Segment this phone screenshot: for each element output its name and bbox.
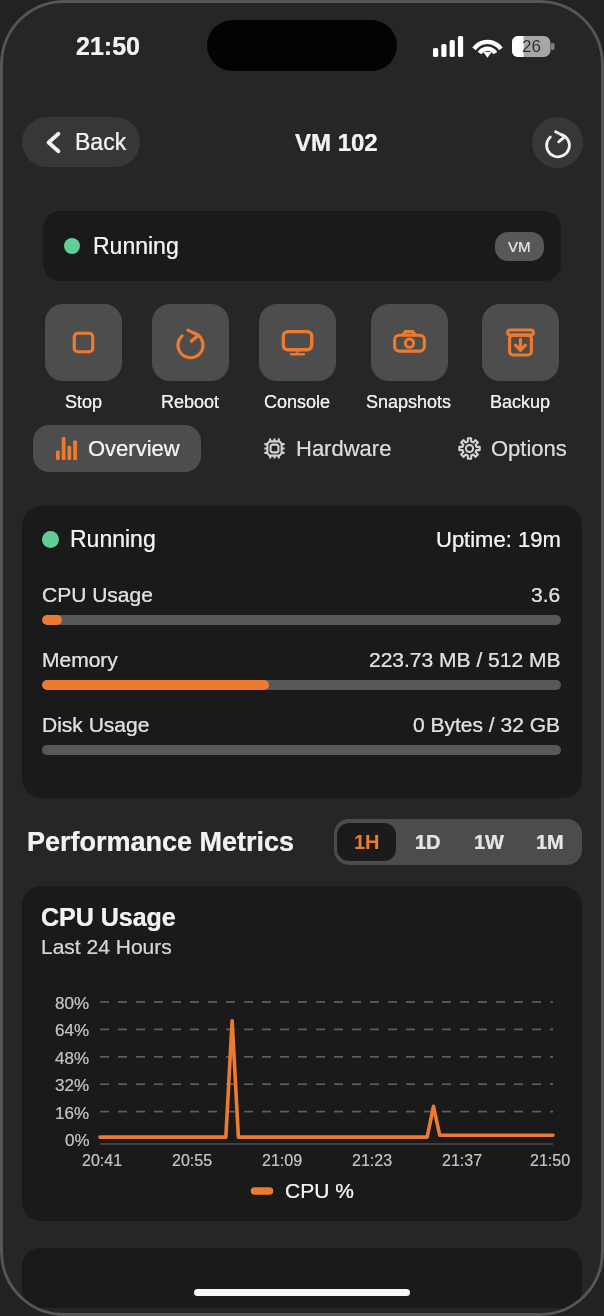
button[interactable]: Back	[22, 117, 140, 167]
staticText: 21:50	[530, 1152, 571, 1170]
staticText: Disk Usage	[42, 713, 150, 736]
staticText: CPU %	[285, 1179, 354, 1202]
staticText: Console	[264, 392, 331, 412]
staticText: 21:23	[352, 1152, 393, 1170]
staticText: Options	[491, 436, 567, 461]
staticText: 48%	[55, 1049, 90, 1068]
staticText: Performance Metrics	[27, 827, 295, 857]
staticText: Stop	[65, 392, 103, 412]
button[interactable]: Snapshots	[366, 304, 452, 412]
staticText: 21:37	[442, 1152, 483, 1170]
staticText: 16%	[55, 1104, 90, 1123]
staticText: 64%	[55, 1021, 90, 1040]
staticText: Hardware	[296, 436, 392, 461]
staticText: CPU Usage	[42, 583, 153, 606]
staticText: 26	[522, 37, 541, 56]
staticText: Running	[70, 526, 156, 552]
button[interactable]: Console	[259, 304, 336, 412]
button[interactable]: Running	[43, 211, 561, 281]
button[interactable]: 1H	[337, 823, 396, 861]
staticText: Backup	[490, 392, 551, 412]
button[interactable]: Stop	[45, 304, 122, 412]
button[interactable]: 1M	[520, 823, 579, 861]
staticText: 20:41	[82, 1152, 123, 1170]
button[interactable]: 1D	[398, 823, 457, 861]
staticText: Uptime: 19m	[436, 527, 561, 552]
staticText: 32%	[55, 1076, 90, 1095]
staticText: 21:50	[76, 32, 140, 60]
button[interactable]: Reboot	[152, 304, 229, 412]
button[interactable]: Backup	[482, 304, 559, 412]
staticText: 223.73 MB / 512 MB	[369, 648, 561, 671]
staticText: 0%	[65, 1131, 90, 1150]
button[interactable]: Options	[454, 425, 571, 472]
staticText: 0 Bytes / 32 GB	[413, 713, 561, 736]
staticText: 20:55	[172, 1152, 213, 1170]
staticText: 1M	[536, 831, 564, 853]
staticText: 80%	[55, 994, 90, 1013]
staticText: Memory	[42, 648, 118, 671]
staticText: VM 102	[295, 129, 378, 156]
staticText: 21:09	[262, 1152, 303, 1170]
staticText: 1D	[415, 831, 441, 853]
staticText: Back	[75, 129, 127, 155]
button[interactable]: 1W	[459, 823, 518, 861]
staticText: Overview	[88, 436, 180, 461]
button[interactable]: Overview	[33, 425, 201, 472]
staticText: 1W	[474, 831, 504, 853]
button[interactable]: Hardware	[259, 425, 396, 472]
staticText: CPU Usage	[41, 903, 176, 931]
staticText: Last 24 Hours	[41, 935, 172, 958]
button[interactable]: Refresh	[532, 117, 583, 168]
staticText: Snapshots	[366, 392, 452, 412]
staticText: 3.6	[531, 583, 561, 606]
staticText: 1H	[354, 831, 380, 853]
staticText: Reboot	[161, 392, 220, 412]
staticText: VM	[508, 238, 531, 255]
staticText: Running	[93, 233, 179, 259]
